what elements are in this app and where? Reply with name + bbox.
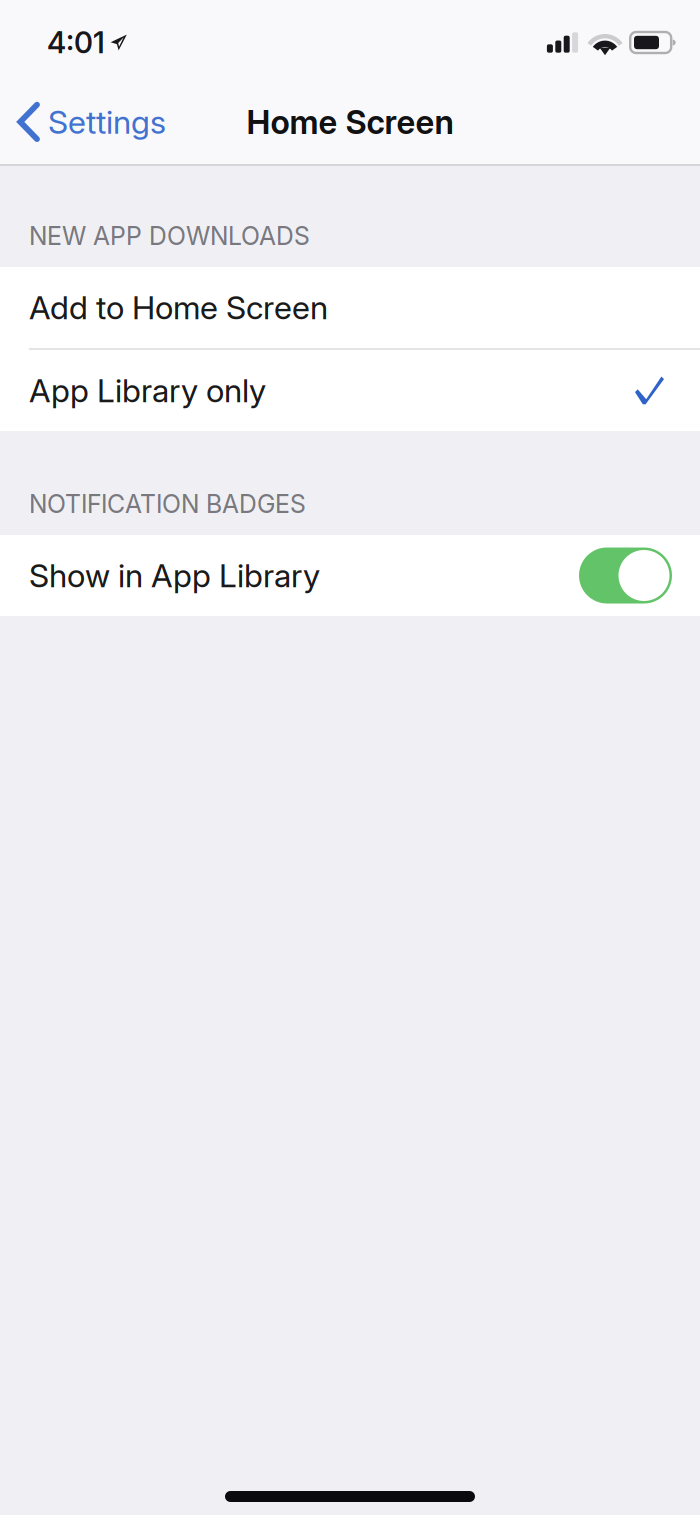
button[interactable]: Show in App Library (0, 535, 700, 616)
staticText: App Library only (29, 371, 266, 410)
staticText: Home Screen (246, 102, 453, 142)
button[interactable]: App Library only (0, 350, 700, 431)
staticText: Add to Home Screen (29, 288, 328, 327)
button[interactable]: Add to Home Screen (0, 267, 700, 348)
staticText: 4:01 (47, 25, 105, 60)
staticText: Show in App Library (29, 556, 320, 595)
staticText: Settings (48, 103, 166, 141)
button[interactable]: Back to Settings (0, 86, 180, 165)
staticText: NOTIFICATION BADGES (29, 489, 306, 519)
staticText: NEW APP DOWNLOADS (29, 221, 310, 251)
